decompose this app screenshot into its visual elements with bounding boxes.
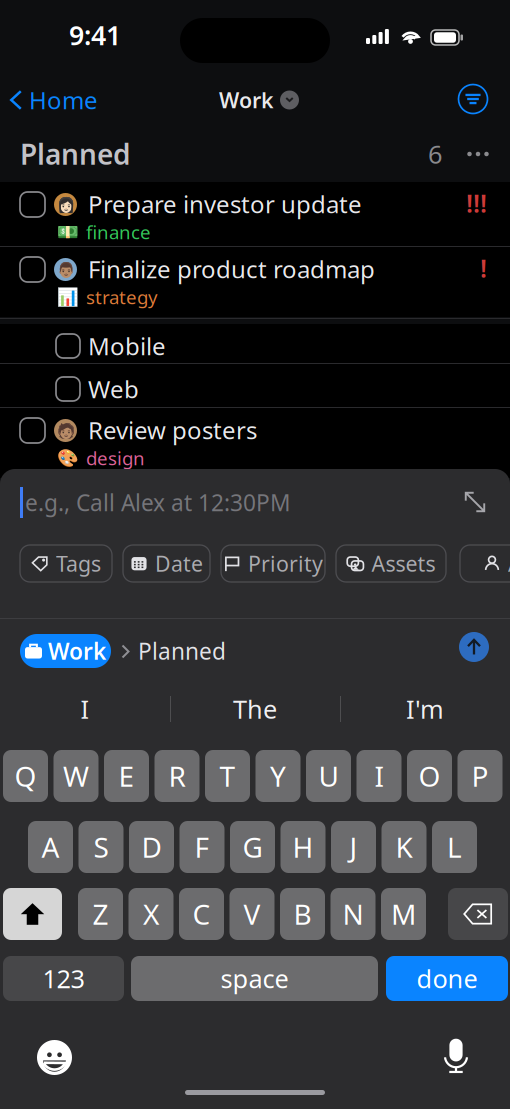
staticText: strategy	[86, 285, 158, 309]
staticText: W	[63, 757, 89, 795]
staticText: 👩🏻	[56, 196, 74, 213]
button[interactable]: L	[432, 821, 477, 873]
button[interactable]: Work	[20, 634, 111, 668]
button[interactable]	[0, 367, 510, 411]
staticText: done	[416, 962, 477, 995]
staticText: Priority	[248, 549, 323, 578]
staticText: 🧑🏽	[56, 422, 74, 439]
button[interactable]: Home	[4, 73, 98, 127]
button[interactable]: Q	[3, 750, 48, 802]
button[interactable]: O	[407, 750, 452, 802]
button[interactable]	[0, 247, 510, 317]
button[interactable]: More	[467, 151, 489, 156]
staticText: Q	[14, 757, 36, 795]
button[interactable]: Work	[200, 75, 299, 125]
button[interactable]: I	[0, 690, 170, 728]
button[interactable]: D	[129, 821, 174, 873]
staticText: K	[395, 828, 412, 866]
button[interactable]: 123	[3, 956, 124, 1001]
button[interactable]: W	[53, 750, 98, 802]
staticText: The	[233, 692, 277, 726]
staticText: X	[143, 895, 159, 933]
button[interactable]: Filter	[458, 84, 487, 113]
button[interactable]: The	[170, 690, 340, 728]
staticText: J	[349, 828, 357, 866]
staticText: Tags	[56, 549, 101, 578]
staticText: I	[374, 757, 383, 795]
staticText: 🎨	[57, 448, 79, 468]
button[interactable]: N	[330, 888, 375, 940]
button[interactable]: T	[205, 750, 250, 802]
staticText: !!!	[466, 186, 487, 220]
button[interactable]	[0, 324, 510, 368]
button[interactable]: Expand	[464, 491, 486, 513]
button[interactable]: C	[179, 888, 224, 940]
staticText: Mobile	[88, 330, 166, 362]
staticText: H	[292, 828, 313, 866]
staticText: U	[318, 757, 338, 795]
staticText: space	[220, 962, 288, 995]
button[interactable]: M	[381, 888, 426, 940]
staticText: Work	[48, 636, 106, 666]
button[interactable]: Emoji	[37, 1040, 72, 1074]
staticText: finance	[86, 220, 151, 244]
button[interactable]: G	[230, 821, 275, 873]
button[interactable]: Y	[255, 750, 300, 802]
button[interactable]: S	[78, 821, 123, 873]
staticText: As	[508, 549, 510, 578]
button[interactable]: Priority	[221, 545, 325, 582]
staticText: 9:41	[69, 17, 121, 53]
button[interactable]: done	[386, 956, 508, 1001]
staticText: !	[480, 251, 487, 285]
staticText: Z	[92, 895, 108, 933]
staticText: N	[342, 895, 363, 933]
button[interactable]: H	[280, 821, 325, 873]
staticText: Prepare investor update	[88, 188, 362, 220]
staticText: O	[418, 757, 440, 795]
staticText: Work	[219, 86, 274, 114]
button[interactable]: R	[154, 750, 199, 802]
button[interactable]: A	[28, 821, 73, 873]
button[interactable]: V	[229, 888, 274, 940]
staticText: I'm	[406, 692, 444, 726]
staticText: V	[243, 895, 260, 933]
staticText: 💵	[57, 222, 79, 242]
button[interactable]: E	[104, 750, 149, 802]
staticText: R	[168, 757, 185, 795]
staticText: design	[86, 446, 145, 470]
staticText: Review posters	[88, 414, 257, 446]
button[interactable]: Z	[78, 888, 123, 940]
button[interactable]: F	[179, 821, 224, 873]
staticText: Finalize product roadmap	[88, 253, 375, 285]
staticText: Planned	[138, 636, 226, 666]
staticText: A	[41, 828, 59, 866]
staticText: Home	[29, 84, 98, 116]
button[interactable]	[0, 408, 510, 478]
button[interactable]: Tags	[20, 545, 112, 582]
button[interactable]: Send	[459, 632, 489, 662]
button[interactable]: Shift	[3, 888, 62, 940]
button[interactable]: Date	[123, 545, 210, 582]
button[interactable]: J	[331, 821, 376, 873]
button[interactable]: U	[306, 750, 351, 802]
button[interactable]: X	[128, 888, 173, 940]
button[interactable]: As	[460, 545, 510, 582]
staticText: P	[471, 757, 488, 795]
staticText: 123	[42, 962, 84, 995]
button[interactable]: B	[280, 888, 325, 940]
staticText: 6	[428, 137, 442, 171]
staticText: Date	[155, 549, 203, 578]
button[interactable]: K	[381, 821, 426, 873]
button[interactable]: P	[457, 750, 502, 802]
button[interactable]: I	[356, 750, 401, 802]
staticText: G	[242, 828, 262, 866]
button[interactable]	[0, 182, 510, 252]
staticText: Web	[88, 373, 139, 405]
button[interactable]: Assets	[336, 545, 446, 582]
button[interactable]: I'm	[340, 690, 510, 728]
staticText: D	[141, 828, 161, 866]
staticText: Planned	[20, 135, 131, 173]
button[interactable]: Delete	[448, 888, 508, 940]
button[interactable]: Dictate	[444, 1038, 468, 1073]
button[interactable]: space	[131, 956, 378, 1001]
